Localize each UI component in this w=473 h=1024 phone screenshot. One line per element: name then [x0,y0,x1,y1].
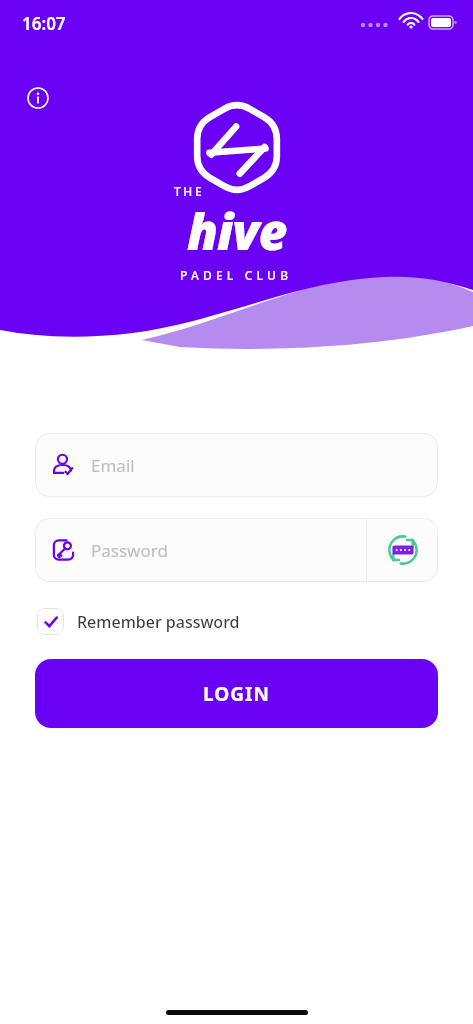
staticText: THE [174,183,205,199]
button[interactable]: Information [22,82,54,114]
staticText: 16:07 [22,12,66,35]
staticText: Remember password [77,611,240,633]
button[interactable]: LOGIN [35,659,438,728]
button[interactable]: Password [35,518,366,582]
staticText: PADEL CLUB [180,267,293,283]
button[interactable]: Email [35,433,438,497]
staticText: Email [91,454,135,477]
staticText: hive [187,197,287,265]
staticText: Password [91,539,168,562]
staticText: LOGIN [203,681,270,707]
button[interactable]: Remember password [35,604,242,639]
button[interactable]: Generate password [367,518,438,582]
